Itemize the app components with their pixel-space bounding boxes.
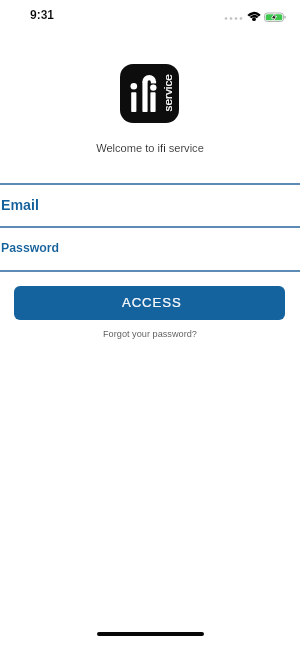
staticText: ACCESS — [122, 295, 182, 310]
staticText: service — [160, 73, 173, 111]
staticText: 9:31 — [30, 8, 55, 21]
staticText: Password — [1, 241, 60, 255]
button[interactable]: Email — [0, 184, 300, 226]
staticText: Forgot your password? — [103, 329, 197, 339]
staticText: Email — [1, 197, 39, 213]
staticText: Welcome to ifi service — [0, 142, 300, 154]
button[interactable]: Forgot your password? — [0, 326, 300, 342]
button[interactable]: ACCESS — [14, 286, 285, 320]
button[interactable]: Password — [0, 227, 300, 269]
